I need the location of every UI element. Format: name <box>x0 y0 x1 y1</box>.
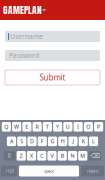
button[interactable]: .?123 <box>1 165 17 176</box>
button[interactable]: Submit <box>5 70 100 85</box>
staticText: ® <box>42 7 45 13</box>
button[interactable]: Q <box>2 122 11 132</box>
button[interactable]: return <box>81 165 104 176</box>
button[interactable]: Y <box>53 122 62 132</box>
staticText: P <box>97 123 100 130</box>
button[interactable]: I <box>73 122 83 132</box>
staticText: space <box>44 168 54 174</box>
button[interactable]: Delete <box>88 151 101 161</box>
button[interactable]: space <box>19 165 79 176</box>
staticText: T <box>46 123 49 130</box>
staticText: Z <box>20 152 23 159</box>
button[interactable]: E <box>22 122 31 132</box>
staticText: ⇧ <box>7 152 13 160</box>
button[interactable]: H <box>58 136 67 146</box>
button[interactable]: B <box>58 151 67 161</box>
staticText: Y <box>56 123 59 130</box>
button[interactable]: O <box>84 122 93 132</box>
staticText: V <box>50 152 53 159</box>
staticText: .?123 <box>4 168 13 174</box>
staticText: F <box>41 138 44 145</box>
staticText: return <box>87 168 98 174</box>
button[interactable]: U <box>63 122 72 132</box>
staticText: ⌫ <box>90 152 99 160</box>
staticText: C <box>40 152 43 159</box>
button[interactable]: N <box>68 151 77 161</box>
staticText: O <box>86 123 90 130</box>
button[interactable]: X <box>27 151 36 161</box>
staticText: U <box>66 123 70 130</box>
staticText: A <box>10 138 13 145</box>
staticText: K <box>82 138 85 145</box>
staticText: I <box>77 123 79 130</box>
button[interactable]: S <box>17 136 26 146</box>
button[interactable]: T <box>43 122 52 132</box>
staticText: Password <box>9 51 39 60</box>
button[interactable]: P <box>94 122 103 132</box>
button[interactable]: M <box>78 151 87 161</box>
button[interactable]: V <box>47 151 57 161</box>
button[interactable]: G <box>48 136 57 146</box>
staticText: GAMEPLAN <box>3 3 42 17</box>
staticText: J <box>72 138 73 145</box>
button[interactable]: C <box>37 151 46 161</box>
button[interactable]: D <box>27 136 37 146</box>
staticText: D <box>30 138 34 145</box>
staticText: R <box>36 123 39 130</box>
button[interactable]: J <box>68 136 78 146</box>
staticText: M <box>80 152 85 159</box>
button[interactable]: F <box>38 136 47 146</box>
button[interactable]: W <box>12 122 21 132</box>
staticText: W <box>14 123 19 130</box>
staticText: E <box>25 123 28 130</box>
button[interactable]: Shift <box>4 151 16 161</box>
button[interactable]: Z <box>17 151 26 161</box>
staticText: N <box>70 152 74 159</box>
staticText: G <box>50 138 54 145</box>
staticText: X <box>30 152 33 159</box>
staticText: B <box>61 152 64 159</box>
staticText: Q <box>4 123 8 130</box>
button[interactable]: R <box>32 122 42 132</box>
button[interactable]: L <box>89 136 98 146</box>
button[interactable]: A <box>7 136 16 146</box>
button[interactable]: K <box>79 136 88 146</box>
staticText: Submit <box>39 72 65 83</box>
staticText: H <box>61 138 65 145</box>
staticText: L <box>92 138 95 145</box>
staticText: Username <box>10 32 43 41</box>
staticText: S <box>20 138 23 145</box>
